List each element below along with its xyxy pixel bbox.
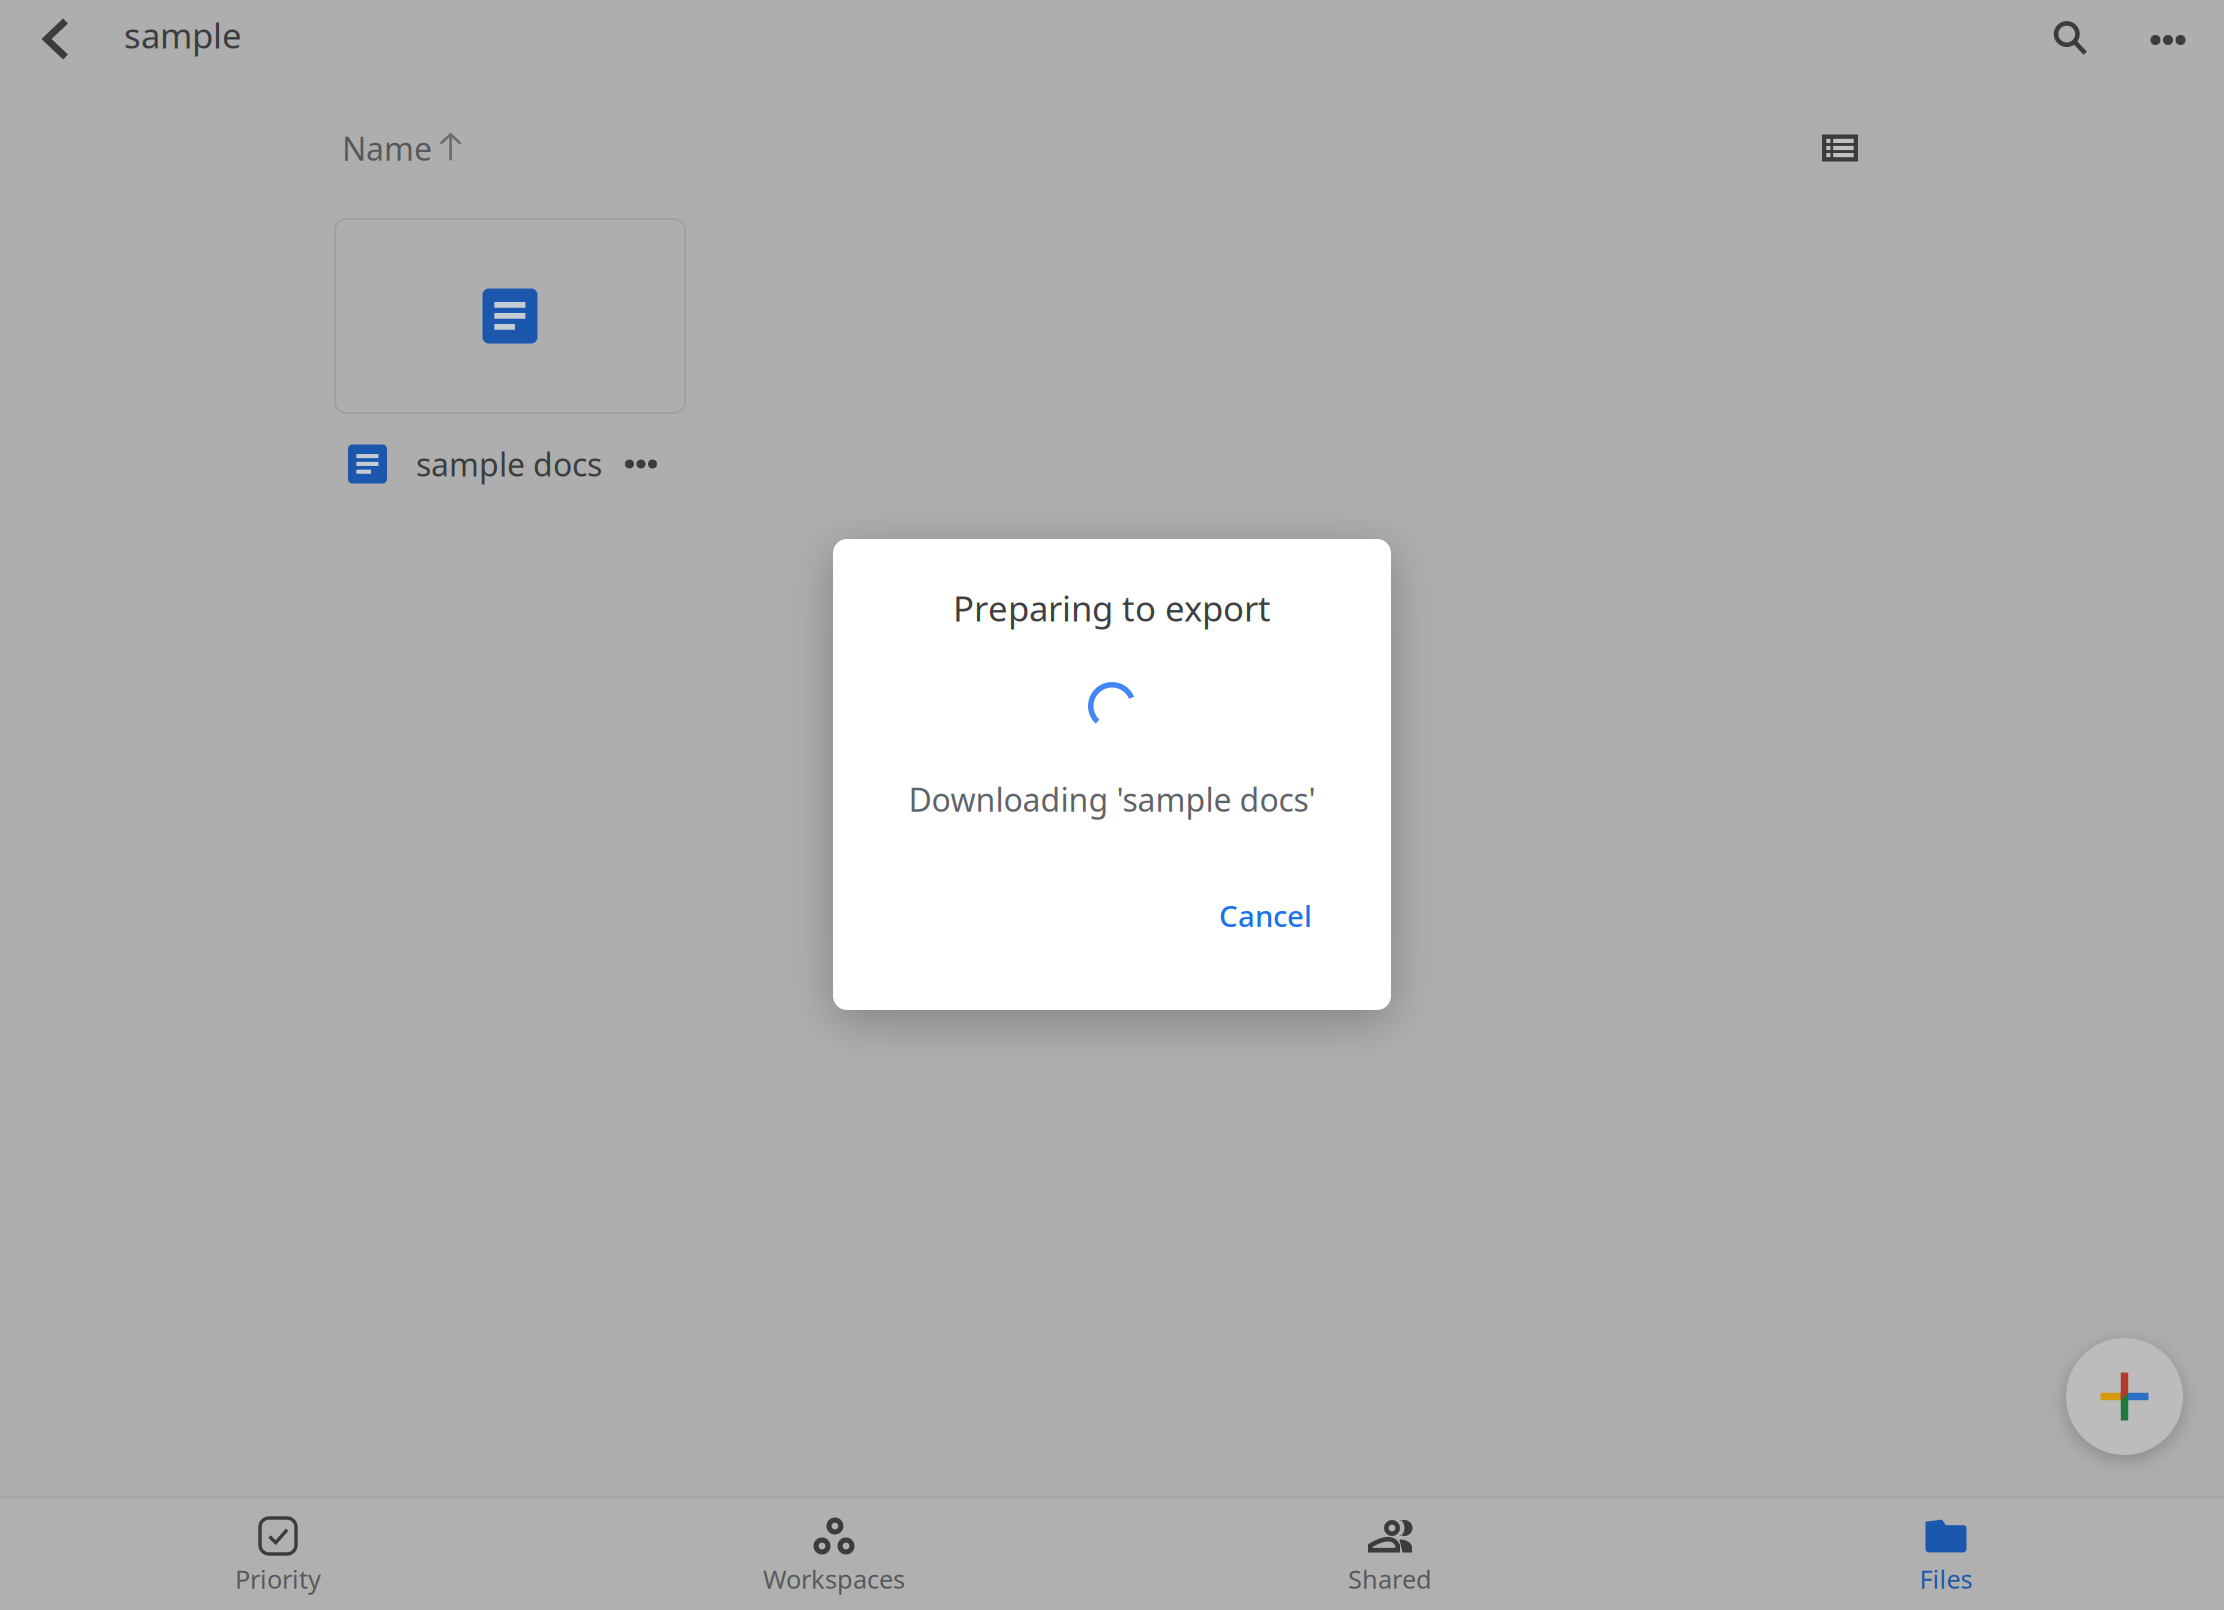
button[interactable]: Create (2066, 1338, 2183, 1455)
button[interactable]: sample docs (335, 435, 685, 493)
staticText: Priority (235, 1562, 321, 1596)
button[interactable]: Shared (1112, 1498, 1668, 1610)
button[interactable]: sample (124, 0, 242, 74)
staticText: Shared (1348, 1562, 1432, 1596)
button[interactable]: Files (1668, 1498, 2224, 1610)
button[interactable]: Workspaces (556, 1498, 1112, 1610)
staticText: Files (1919, 1562, 1972, 1596)
staticText: sample (124, 12, 242, 58)
button[interactable]: Priority (0, 1498, 556, 1610)
button[interactable]: Search (2027, 0, 2115, 78)
button[interactable]: Back (12, 0, 100, 78)
button[interactable]: Cancel (1203, 884, 1328, 947)
button[interactable]: Name (328, 116, 476, 180)
staticText: sample docs (416, 443, 602, 485)
staticText: Name (342, 127, 432, 169)
staticText: Workspaces (763, 1562, 905, 1596)
staticText: Downloading 'sample docs' (908, 778, 1315, 820)
staticText: Cancel (1219, 896, 1312, 935)
staticText: Preparing to export (953, 585, 1271, 631)
button[interactable]: More options (2124, 1, 2212, 79)
button[interactable] (335, 219, 685, 413)
button[interactable]: Switch to list view (1798, 114, 1882, 182)
